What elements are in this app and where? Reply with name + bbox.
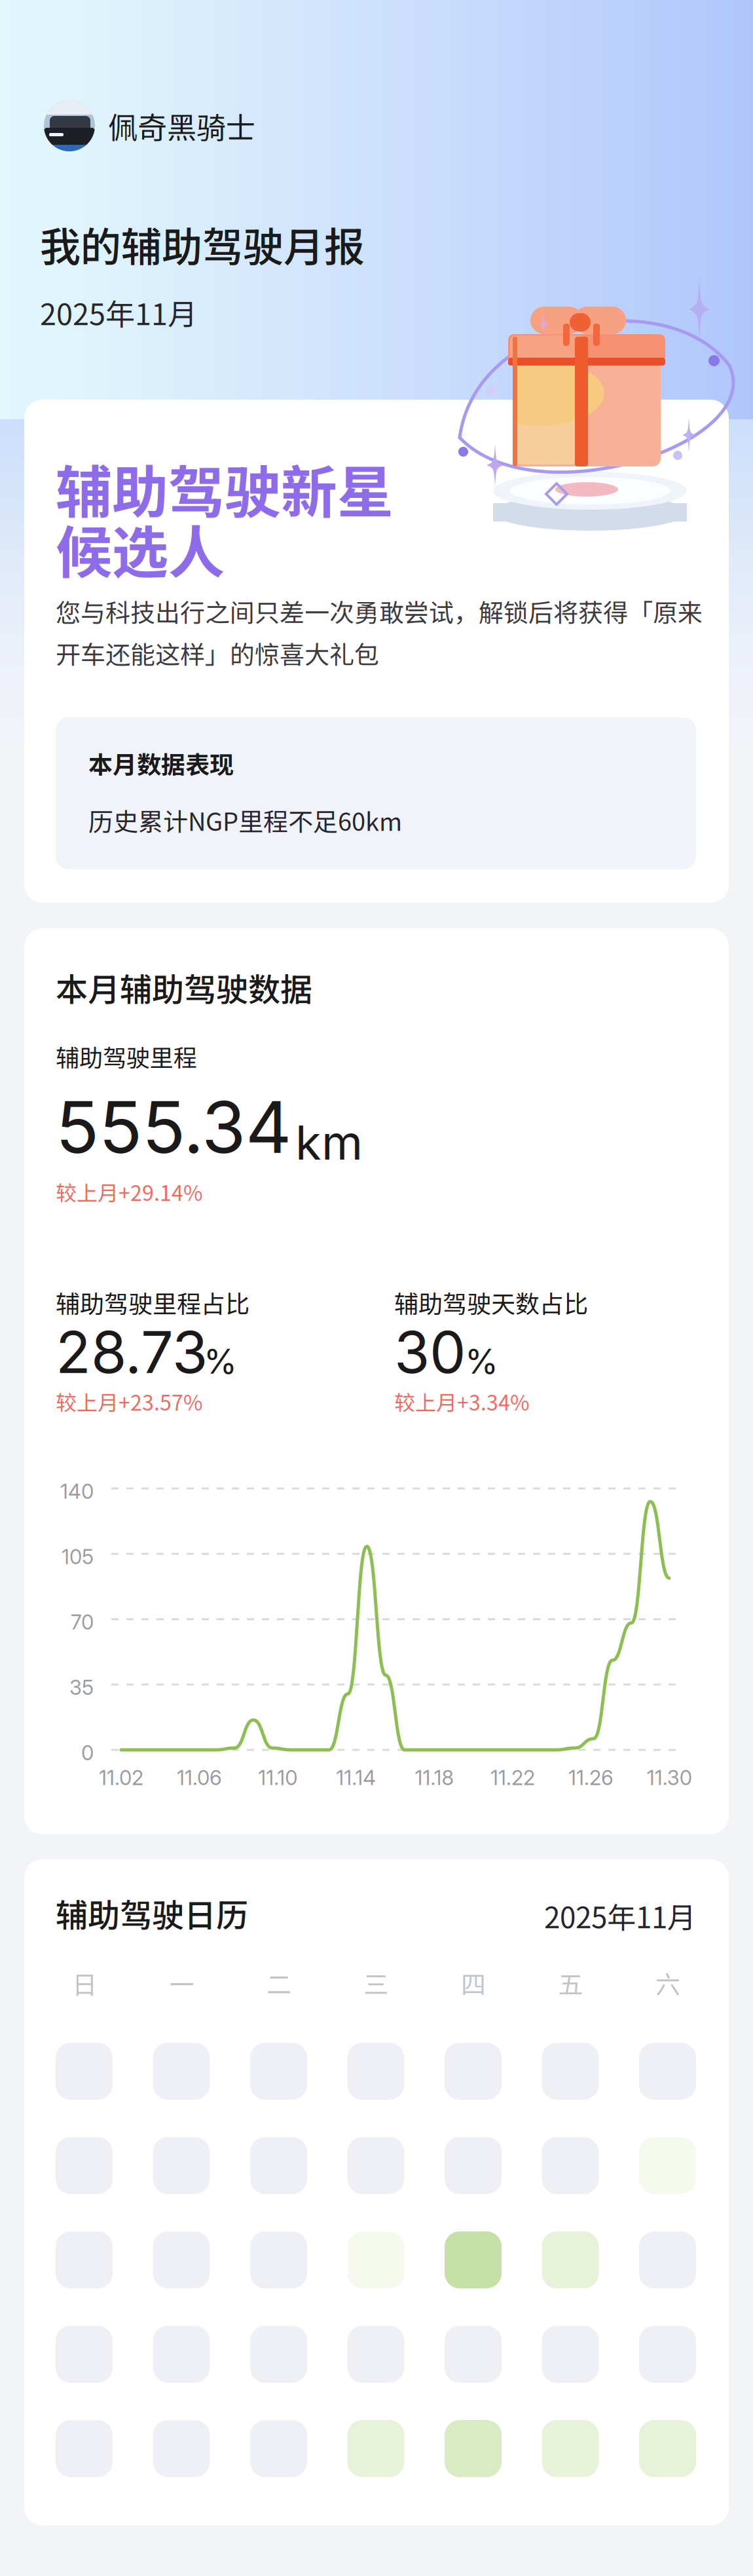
staticText: 辅助驾驶日历: [56, 1894, 248, 1932]
staticText: 较上月+3.34%: [394, 1389, 529, 1414]
staticText: 11.06: [177, 1768, 222, 1788]
staticText: 五: [558, 1968, 583, 1998]
staticText: 一: [169, 1968, 194, 1998]
staticText: 30: [394, 1323, 466, 1381]
staticText: 本月数据表现: [88, 749, 234, 778]
staticText: 本月辅助驾驶数据: [56, 968, 312, 1006]
staticText: 2025年11月: [40, 295, 197, 330]
staticText: 辅助驾驶里程占比: [56, 1288, 249, 1317]
staticText: 较上月+23.57%: [56, 1389, 202, 1414]
staticText: 二: [266, 1968, 291, 1998]
staticText: 140: [60, 1481, 94, 1501]
staticText: 我的辅助驾驶月报: [40, 220, 365, 268]
staticText: 您与科技出行之间只差一次勇敢尝试，解锁后将获得「原来: [56, 596, 703, 626]
staticText: 11.02: [99, 1768, 143, 1788]
staticText: 开车还能这样」的惊喜大礼包: [56, 638, 379, 668]
staticText: %: [204, 1344, 237, 1378]
staticText: 11.26: [568, 1768, 614, 1788]
staticText: 佩奇黑骑士: [108, 108, 255, 143]
staticText: 555.34: [56, 1091, 291, 1162]
button[interactable]: 佩奇黑骑士: [0, 90, 753, 162]
staticText: km: [295, 1119, 363, 1166]
staticText: 历史累计NGP里程不足60km: [88, 805, 402, 835]
staticText: 105: [62, 1547, 94, 1567]
staticText: 35: [69, 1677, 94, 1697]
staticText: 辅助驾驶新星: [56, 455, 394, 522]
staticText: 11.10: [258, 1768, 297, 1788]
staticText: 2025年11月: [544, 1899, 696, 1933]
staticText: %: [465, 1344, 498, 1378]
staticText: 辅助驾驶天数占比: [394, 1288, 588, 1317]
staticText: 三: [364, 1968, 389, 1998]
staticText: 11.22: [490, 1768, 535, 1788]
staticText: 11.18: [415, 1768, 454, 1788]
staticText: 候选人: [56, 515, 225, 582]
staticText: 11.30: [647, 1768, 692, 1788]
staticText: 较上月+29.14%: [56, 1179, 202, 1204]
staticText: 六: [655, 1968, 680, 1998]
staticText: 日: [72, 1968, 97, 1998]
staticText: 28.73: [56, 1323, 208, 1381]
staticText: 0: [81, 1743, 94, 1763]
staticText: 四: [461, 1968, 486, 1998]
staticText: 11.14: [336, 1768, 376, 1788]
staticText: 辅助驾驶里程: [56, 1042, 197, 1070]
staticText: 70: [71, 1612, 94, 1632]
